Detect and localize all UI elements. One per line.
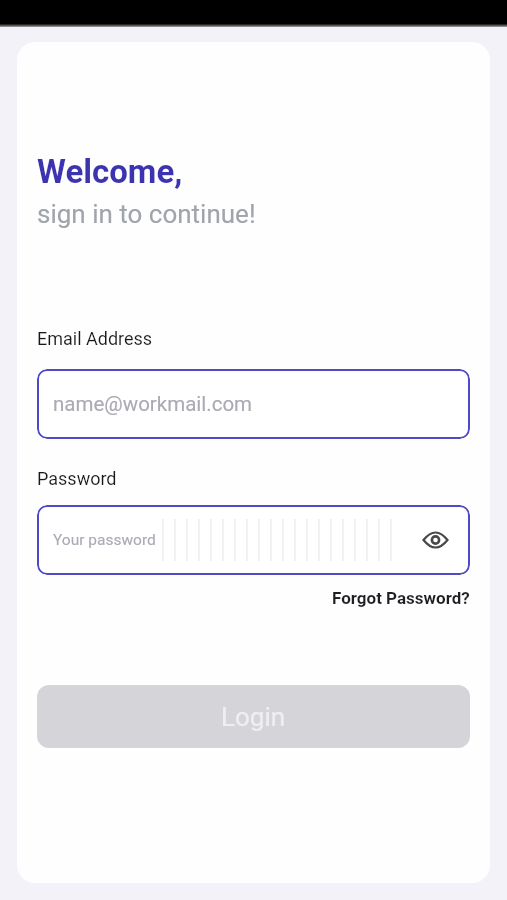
- button[interactable]: Forgot Password?: [332, 588, 470, 608]
- button[interactable]: Your password: [37, 505, 470, 575]
- staticText: Your password: [53, 531, 156, 549]
- staticText: Email Address: [37, 328, 153, 349]
- staticText: sign in to continue!: [37, 199, 256, 229]
- staticText: Forgot Password?: [332, 588, 470, 608]
- button[interactable]: Login: [37, 685, 470, 748]
- staticText: Password: [37, 468, 117, 489]
- button[interactable]: name@workmail.com: [37, 369, 470, 439]
- staticText: name@workmail.com: [53, 392, 253, 416]
- staticText: Welcome,: [37, 152, 183, 191]
- staticText: Login: [221, 702, 286, 732]
